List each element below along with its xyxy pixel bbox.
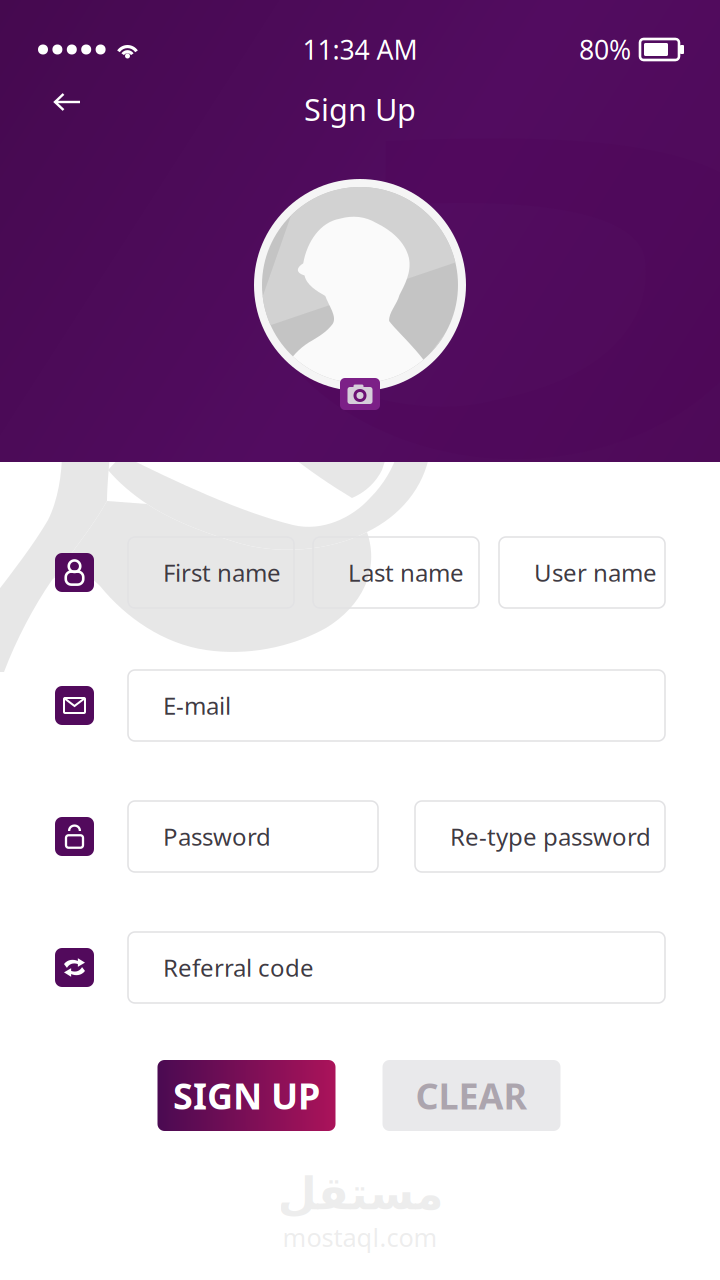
staticText: First name [163, 557, 281, 588]
button[interactable]: Back [33, 76, 102, 128]
button[interactable]: SIGN UP [157, 1060, 335, 1131]
staticText: Sign Up [304, 89, 416, 129]
staticText: مستقل [277, 1168, 443, 1219]
button[interactable]: Change photo [340, 378, 380, 410]
staticText: Last name [348, 557, 464, 588]
staticText: CLEAR [415, 1072, 527, 1119]
staticText: User name [534, 557, 657, 588]
button[interactable]: CLEAR [382, 1060, 560, 1131]
staticText: SIGN UP [173, 1072, 320, 1119]
staticText: E-mail [163, 690, 231, 721]
staticText: Password [163, 821, 271, 852]
staticText: Referral code [163, 952, 314, 983]
staticText: 80% [579, 32, 631, 67]
staticText: 11:34 AM [302, 32, 417, 67]
staticText: Re-type password [450, 821, 651, 852]
staticText: mostaql.com [282, 1220, 437, 1254]
